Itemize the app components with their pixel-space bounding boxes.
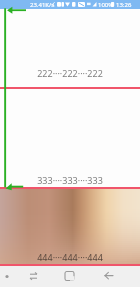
- staticText: 23.41K/s: [30, 1, 55, 9]
- staticText: 13:26: [116, 1, 132, 9]
- button[interactable]: Assistant: [0, 266, 18, 287]
- staticText: 222····222····222: [0, 67, 140, 79]
- button[interactable]: Recents: [60, 266, 80, 287]
- button[interactable]: Back: [98, 266, 122, 287]
- button[interactable]: Switch app: [24, 266, 44, 287]
- staticText: 100%: [98, 1, 114, 9]
- staticText: 333····333····333: [0, 174, 140, 186]
- staticText: 444····444····444: [0, 251, 140, 263]
